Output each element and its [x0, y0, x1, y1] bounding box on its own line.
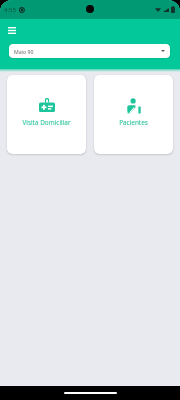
staticText: Maio 90	[14, 48, 34, 55]
button[interactable]: Pacientes	[94, 75, 173, 154]
button[interactable]: Open navigation menu	[3, 21, 21, 39]
staticText: Pacientes	[94, 118, 173, 127]
button[interactable]: Maio 90	[9, 44, 170, 58]
button[interactable]: Visita Domiciliar	[7, 75, 86, 154]
staticText: 4:55	[4, 6, 16, 14]
staticText: Visita Domiciliar	[7, 118, 86, 127]
